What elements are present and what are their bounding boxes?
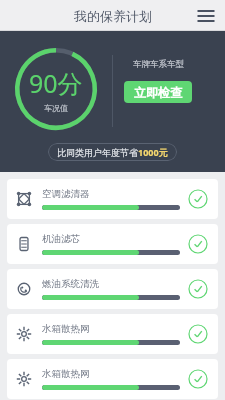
staticText: 燃油系统清洗 [42, 278, 99, 290]
staticText: 机油滤芯 [42, 233, 80, 245]
staticText: 车牌车系车型 [133, 59, 184, 70]
button[interactable]: 空调滤清器 [7, 179, 218, 219]
button[interactable]: 机油滤芯 [7, 224, 218, 264]
staticText: 水箱散热网 [42, 368, 90, 380]
staticText: 90分 [29, 66, 83, 100]
staticText: 立即检查 [134, 85, 182, 100]
staticText: 车况值 [44, 103, 68, 113]
staticText: 我的保养计划 [74, 8, 152, 24]
button[interactable]: Menu [194, 4, 218, 28]
staticText: 空调滤清器 [42, 188, 90, 200]
staticText: 比同类用户年度节省1000元 [57, 146, 168, 158]
button[interactable]: 立即检查 [124, 81, 192, 103]
button[interactable]: 水箱散热网 [7, 314, 218, 354]
button[interactable]: 燃油系统清洗 [7, 269, 218, 309]
staticText: 水箱散热网 [42, 323, 90, 335]
button[interactable]: 水箱散热网 [7, 359, 218, 399]
